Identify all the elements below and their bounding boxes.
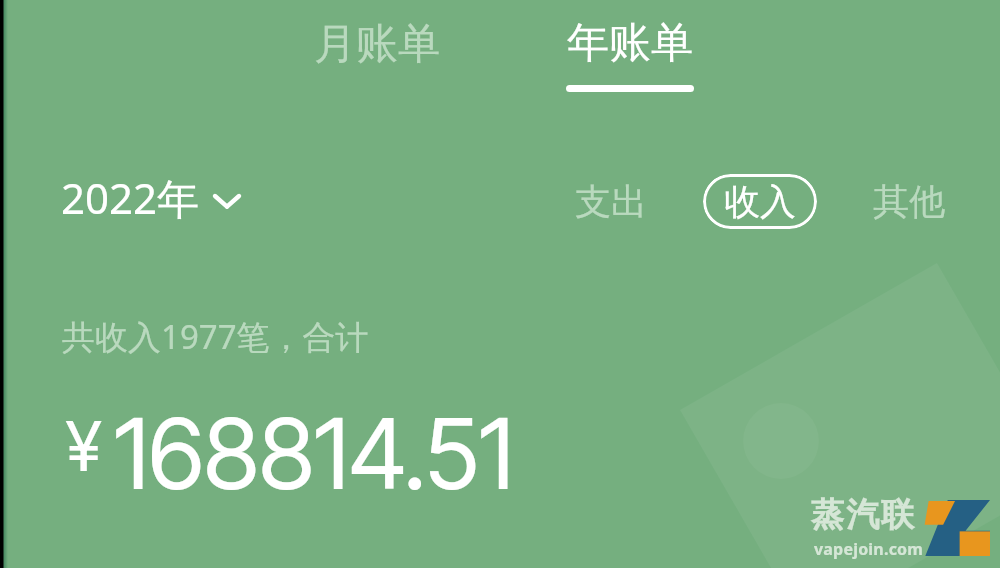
staticText: 收入 [724, 179, 796, 224]
button[interactable]: 其他 [857, 167, 961, 236]
staticText: vapejoin.com [814, 538, 924, 560]
staticText: 年账单 [567, 17, 693, 70]
button[interactable]: 年账单 [503, 0, 756, 100]
staticText: 其他 [873, 179, 945, 224]
staticText: 共收入1977笔，合计 [62, 314, 369, 359]
other: Select year [213, 188, 241, 208]
staticText: 支出 [575, 179, 647, 224]
button[interactable]: 支出 [559, 167, 663, 236]
staticText: 月账单 [314, 18, 440, 71]
button[interactable]: 2022年 [61, 169, 241, 226]
staticText: 2022年 [61, 169, 200, 226]
staticText: 蒸汽联 [810, 494, 915, 536]
button[interactable]: 月账单 [250, 0, 503, 100]
button[interactable]: 收入 [703, 174, 817, 229]
